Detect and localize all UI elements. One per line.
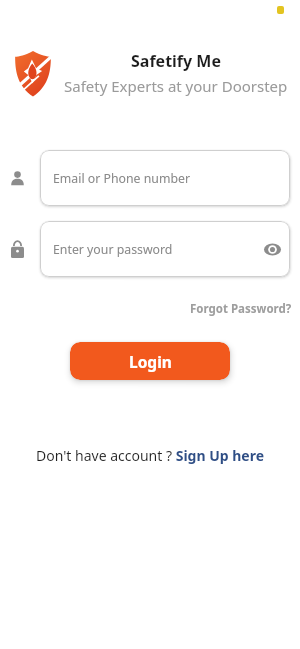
staticText: Enter your password xyxy=(53,241,173,258)
staticText: Safetify Me xyxy=(131,50,222,72)
staticText: Don't have account ? Sign Up here xyxy=(36,446,265,465)
staticText: Login xyxy=(129,351,172,372)
button[interactable]: Forgot Password? xyxy=(190,301,292,317)
staticText: Safety Experts at your Doorstep xyxy=(64,76,288,96)
button[interactable]: Don't have account ? Sign Up here xyxy=(0,446,300,465)
button[interactable] xyxy=(264,241,281,258)
staticText: Email or Phone number xyxy=(53,170,190,187)
button[interactable]: Login xyxy=(70,342,230,380)
button[interactable]: Enter your password xyxy=(40,221,290,277)
button[interactable]: Email or Phone number xyxy=(40,150,290,206)
